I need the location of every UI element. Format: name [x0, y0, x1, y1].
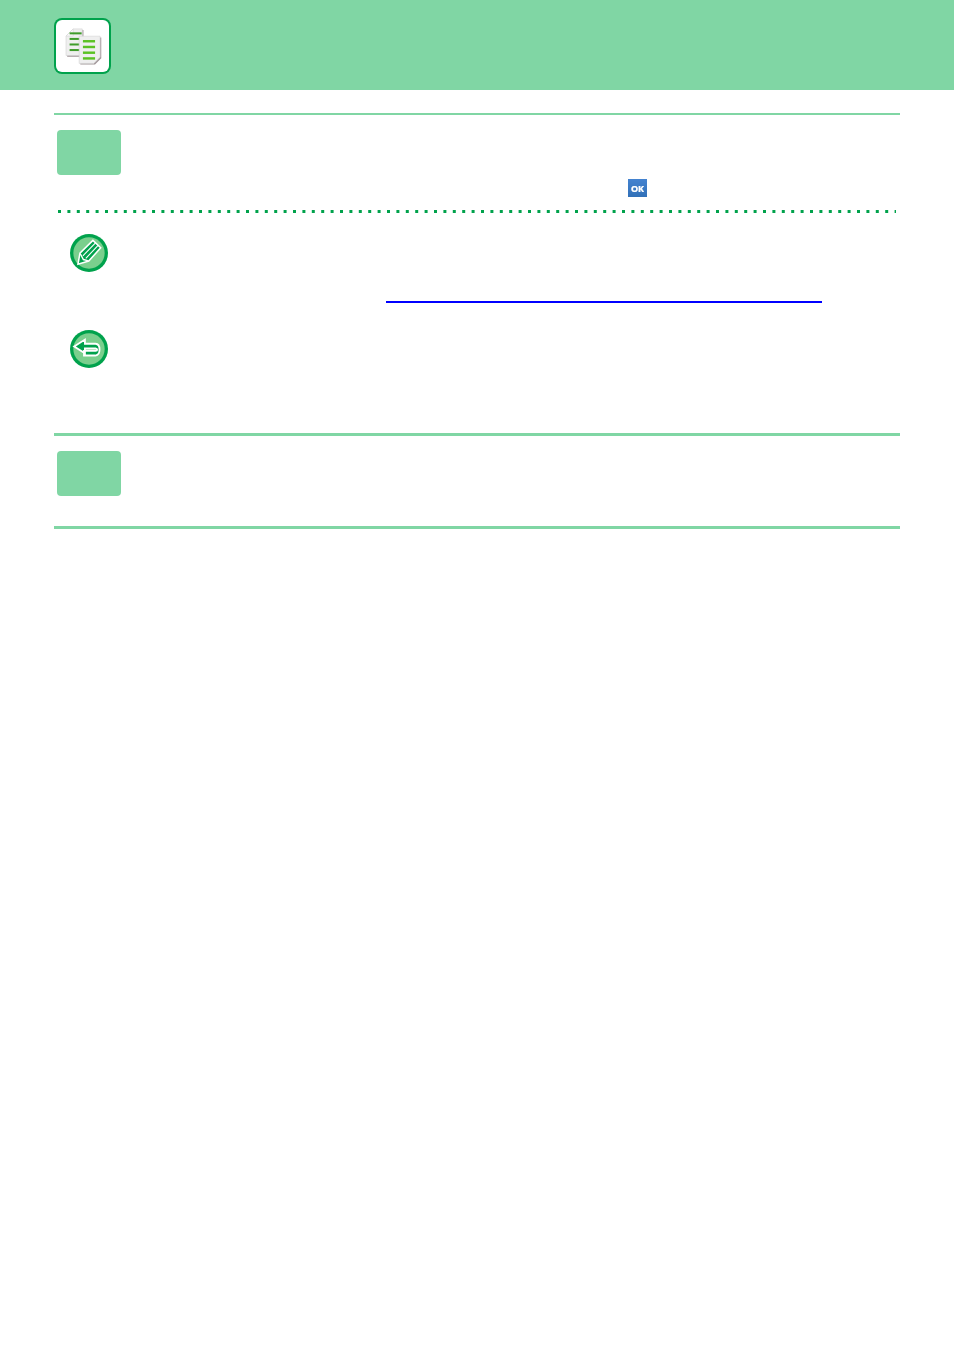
button[interactable]: Step 1 — [57, 130, 121, 175]
button[interactable]: Cancel — [70, 330, 108, 368]
button[interactable]: Copy — [54, 18, 111, 74]
button[interactable]: Note — [70, 234, 108, 272]
button[interactable]: Step 2 — [57, 451, 121, 496]
staticText: OK — [631, 182, 644, 194]
button[interactable]: OK — [628, 179, 647, 197]
